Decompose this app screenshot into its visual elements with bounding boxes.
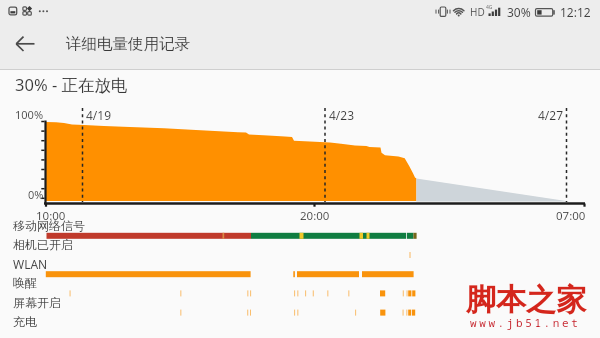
staticText: 4/23: [329, 107, 355, 123]
staticText: www.jb51.net: [470, 315, 581, 330]
staticText: 脚本之家: [466, 281, 586, 319]
staticText: 30%: [507, 4, 531, 20]
staticText: 100%: [15, 107, 44, 122]
staticText: 30% - 正在放电: [15, 73, 128, 96]
staticText: 0%: [28, 187, 44, 202]
staticText: 4G: [486, 4, 493, 11]
staticText: HD: [470, 5, 485, 19]
staticText: 详细电量使用记录: [66, 34, 190, 54]
staticText: 4/19: [86, 107, 112, 123]
staticText: 20:00: [300, 208, 330, 224]
staticText: 唤醒: [13, 275, 37, 290]
staticText: WLAN: [13, 256, 48, 272]
staticText: 相机已开启: [13, 237, 73, 252]
staticText: 充电: [13, 314, 37, 329]
staticText: 12:12: [560, 4, 591, 20]
staticText: 10:00: [36, 208, 66, 224]
staticText: 移动网络信号: [13, 218, 85, 233]
button[interactable]: Back: [8, 27, 42, 61]
staticText: 07:00: [556, 208, 586, 224]
staticText: 4/27: [538, 107, 564, 123]
staticText: 屏幕开启: [13, 295, 61, 310]
